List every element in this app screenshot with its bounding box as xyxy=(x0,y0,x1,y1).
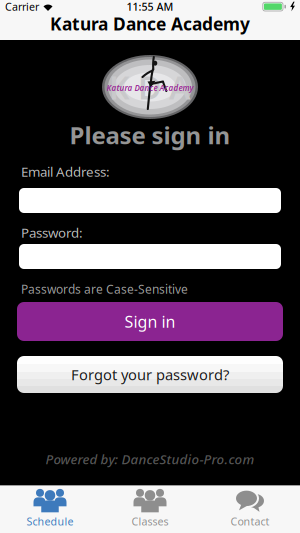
staticText: Katura Dance Academy xyxy=(106,83,193,93)
staticText: Powered by: DanceStudio-Pro.com xyxy=(45,450,254,468)
staticText: Classes xyxy=(131,514,168,528)
button[interactable]: Sign in xyxy=(17,302,283,341)
button[interactable] xyxy=(19,188,281,213)
button[interactable]: Classes xyxy=(100,486,200,533)
button[interactable]: Powered by: DanceStudio-Pro.com xyxy=(45,451,254,467)
staticText: Contact xyxy=(230,514,269,528)
staticText: 11:55 AM xyxy=(126,0,173,14)
staticText: Passwords are Case-Sensitive xyxy=(21,281,188,297)
button[interactable] xyxy=(19,244,281,269)
staticText: Carrier xyxy=(5,0,39,14)
staticText: K D A xyxy=(109,66,191,108)
staticText: Schedule xyxy=(26,514,73,528)
staticText: Email Address: xyxy=(21,163,110,180)
button[interactable]: Contact xyxy=(200,486,300,533)
staticText: Password: xyxy=(21,224,83,241)
staticText: Katura Dance Academy xyxy=(50,12,250,35)
button[interactable]: Schedule xyxy=(0,486,100,533)
button[interactable]: Forgot your password? xyxy=(17,356,283,393)
staticText: Forgot your password? xyxy=(71,365,229,384)
staticText: Sign in xyxy=(124,311,175,332)
staticText: Please sign in xyxy=(69,119,230,151)
